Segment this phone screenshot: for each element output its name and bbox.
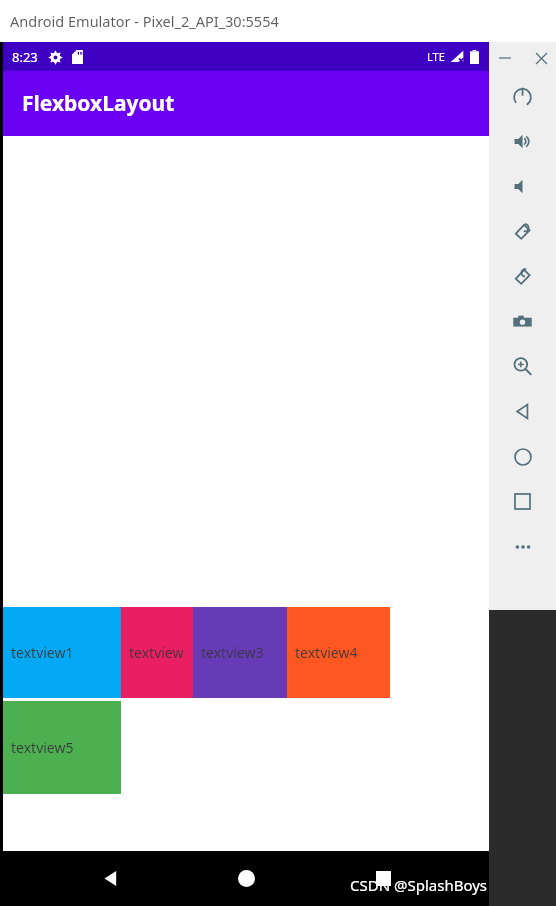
button[interactable]: textview5	[3, 701, 121, 794]
staticText: textview5	[11, 738, 74, 757]
button[interactable]: textview3	[193, 607, 287, 698]
button[interactable]: Volume up	[489, 119, 556, 164]
button[interactable]: Volume down	[489, 164, 556, 209]
button[interactable]: Minimize	[493, 46, 517, 70]
button[interactable]: textview4	[287, 607, 390, 698]
staticText: CSDN @SplashBoys	[350, 875, 488, 895]
button[interactable]: Zoom	[489, 344, 556, 389]
button[interactable]: Home	[489, 434, 556, 479]
button[interactable]: Rotate left	[489, 209, 556, 254]
button[interactable]: textview2	[121, 607, 193, 698]
staticText: textview2	[129, 643, 185, 662]
button[interactable]: Back	[80, 851, 140, 906]
staticText: LTE	[427, 49, 445, 64]
button[interactable]: Overview	[489, 479, 556, 524]
staticText: FlexboxLayout	[22, 89, 175, 118]
staticText: textview3	[201, 643, 264, 662]
button[interactable]: Back	[489, 389, 556, 434]
button[interactable]: Close	[529, 46, 553, 70]
staticText: Android Emulator - Pixel_2_API_30:5554	[10, 11, 279, 31]
staticText: textview4	[295, 643, 358, 662]
staticText: 8:23	[12, 48, 38, 66]
button[interactable]: Recent apps	[353, 851, 413, 906]
staticText: textview1	[11, 643, 74, 662]
button[interactable]: Rotate right	[489, 254, 556, 299]
button[interactable]: Home	[216, 851, 276, 906]
button[interactable]: Power	[489, 74, 556, 119]
button[interactable]: textview1	[3, 607, 121, 698]
button[interactable]: Take screenshot	[489, 299, 556, 344]
button[interactable]: More	[489, 524, 556, 569]
